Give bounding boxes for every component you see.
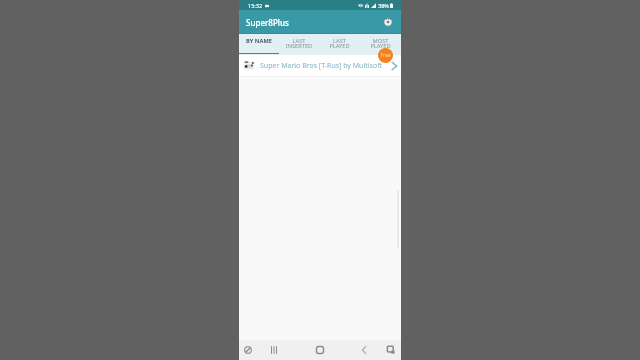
staticText: Super Mario Bros [T-Rus] by Multisoft bbox=[260, 61, 383, 71]
staticText: MOST PLAYED bbox=[360, 37, 401, 50]
staticText: 15:32 bbox=[248, 2, 263, 9]
staticText: Super8Plus bbox=[246, 17, 289, 28]
staticText: Free bbox=[380, 52, 391, 59]
button[interactable]: Recording bbox=[378, 48, 393, 63]
staticText: LAST INSERTED bbox=[279, 37, 319, 50]
button[interactable]: Multi window bbox=[381, 340, 401, 360]
staticText: 38% bbox=[378, 2, 389, 9]
button[interactable]: Hide keyboard bbox=[238, 340, 258, 360]
button[interactable]: Super Mario Bros [T-Rus] by Multisoft bbox=[239, 55, 401, 76]
button[interactable]: MOST PLAYED bbox=[360, 34, 401, 55]
staticText: LAST PLAYED bbox=[319, 37, 360, 50]
button[interactable]: BY NAME bbox=[239, 34, 279, 55]
button[interactable]: Account bbox=[384, 18, 392, 26]
button[interactable]: Recents bbox=[264, 340, 284, 360]
button[interactable]: Back bbox=[354, 340, 374, 360]
button[interactable]: LAST INSERTED bbox=[279, 34, 319, 55]
button[interactable]: Home bbox=[310, 340, 330, 360]
button[interactable]: LAST PLAYED bbox=[319, 34, 360, 55]
staticText: BY NAME bbox=[239, 37, 279, 45]
